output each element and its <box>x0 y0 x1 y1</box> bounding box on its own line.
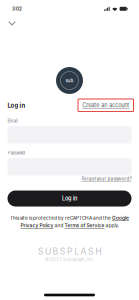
staticText: This site is protected by reCAPTCHA and … <box>10 215 129 221</box>
button[interactable]: Create an account <box>78 99 133 111</box>
staticText: Email <box>7 118 17 123</box>
staticText: Log in <box>62 195 77 202</box>
staticText: sub <box>65 78 73 83</box>
staticText: SUBSPLASH <box>38 246 101 256</box>
staticText: Create an account <box>82 102 129 109</box>
button[interactable]: Close <box>5 18 19 29</box>
button[interactable]: Log in <box>7 190 131 206</box>
staticText: Privacy Policy and Terms of Service appl… <box>20 223 118 228</box>
staticText: Password <box>7 150 25 155</box>
staticText: Log in <box>7 102 25 109</box>
staticText: 3:02 <box>12 6 22 12</box>
button[interactable]: Forgot your password? <box>81 176 131 181</box>
staticText: © 2025 Subsplash, Inc. <box>45 257 94 262</box>
staticText: Forgot your password? <box>81 176 131 181</box>
